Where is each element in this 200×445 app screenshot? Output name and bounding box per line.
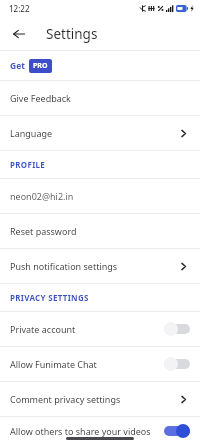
button[interactable]: Back: [9, 24, 29, 44]
staticText: Give Feedback: [10, 92, 190, 104]
button[interactable]: Get: [0, 51, 200, 80]
button[interactable]: Toggle on: [164, 424, 190, 438]
button[interactable]: Toggle off: [164, 322, 190, 336]
staticText: Language: [10, 127, 176, 139]
button[interactable]: Language: [0, 116, 200, 150]
staticText: PROFILE: [10, 159, 46, 170]
staticText: Get: [10, 60, 25, 72]
staticText: PRIVACY SETTINGS: [10, 292, 89, 303]
button[interactable]: Give Feedback: [0, 81, 200, 115]
button[interactable]: Push notification settings: [0, 249, 200, 283]
button[interactable]: Allow others to share your videos: [0, 417, 200, 445]
button[interactable]: Reset password: [0, 214, 200, 248]
staticText: Private account: [10, 323, 164, 335]
button[interactable]: Allow Funimate Chat: [0, 347, 200, 381]
staticText: neon02@hi2.in: [10, 190, 190, 202]
staticText: Allow Funimate Chat: [10, 358, 164, 370]
staticText: Push notification settings: [10, 260, 176, 272]
button[interactable]: neon02@hi2.in: [0, 179, 200, 213]
staticText: 12:22: [9, 3, 30, 14]
staticText: Reset password: [10, 225, 190, 237]
button[interactable]: Comment privacy settings: [0, 382, 200, 416]
staticText: PRO: [33, 61, 48, 71]
staticText: Settings: [46, 25, 98, 43]
staticText: Comment privacy settings: [10, 393, 176, 405]
button[interactable]: Private account: [0, 312, 200, 346]
button[interactable]: Toggle off: [164, 357, 190, 371]
staticText: Allow others to share your videos: [10, 425, 164, 437]
